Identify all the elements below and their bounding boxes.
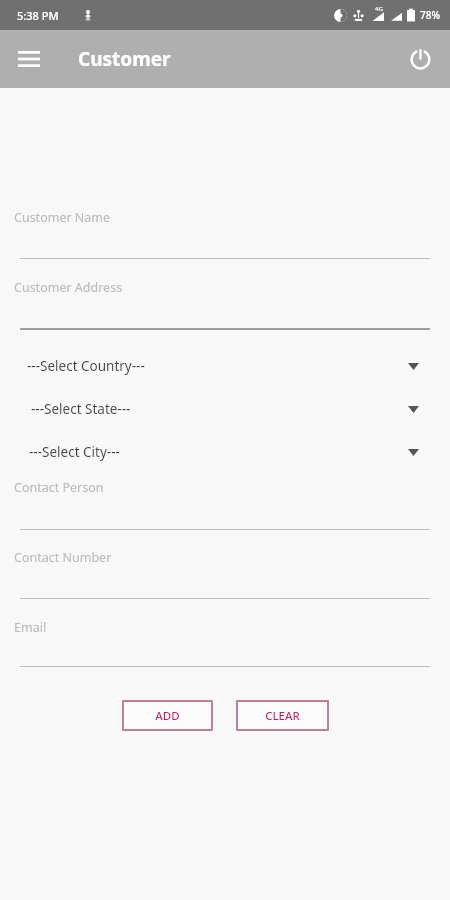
- staticText: ---Select Country---: [27, 357, 145, 375]
- staticText: 5:38 PM: [17, 8, 59, 23]
- button[interactable]: Email: [14, 619, 450, 636]
- button[interactable]: ---Select State---: [0, 390, 450, 428]
- button[interactable]: ADD: [122, 700, 213, 731]
- staticText: ADD: [155, 708, 180, 724]
- button[interactable]: Customer Name: [14, 209, 450, 226]
- button[interactable]: ---Select City---: [0, 433, 450, 471]
- staticText: CLEAR: [265, 708, 300, 724]
- staticText: ---Select State---: [31, 400, 131, 418]
- staticText: ---Select City---: [29, 443, 120, 461]
- button[interactable]: CLEAR: [236, 700, 329, 731]
- staticText: 78%: [420, 8, 440, 22]
- button[interactable]: Customer Address: [14, 279, 450, 296]
- button[interactable]: Logout: [402, 41, 438, 77]
- button[interactable]: Open navigation menu: [12, 42, 46, 76]
- staticText: Customer: [78, 46, 171, 72]
- button[interactable]: ---Select Country---: [0, 347, 450, 385]
- button[interactable]: Contact Person: [14, 479, 450, 496]
- staticText: 4G: [375, 5, 383, 13]
- button[interactable]: Contact Number: [14, 549, 450, 566]
